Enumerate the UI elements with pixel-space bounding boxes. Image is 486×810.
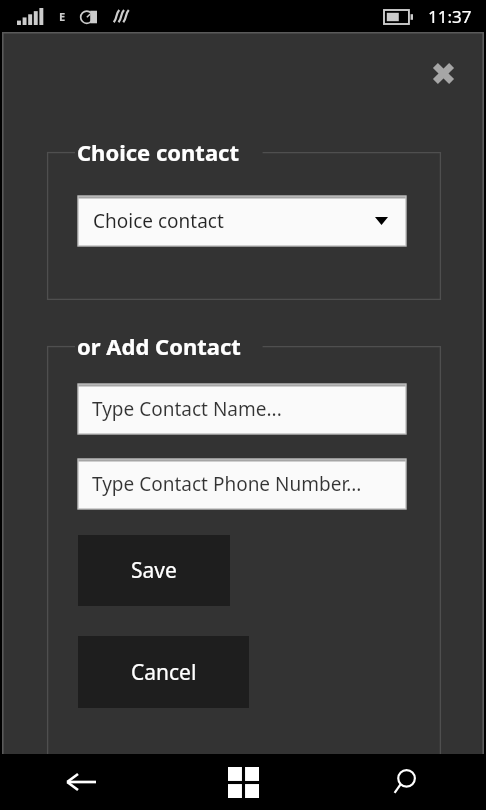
button[interactable]: Search [324,754,486,810]
staticText: E [59,9,66,24]
staticText: Cancel [131,658,197,687]
button[interactable]: Start [162,754,324,810]
staticText: Choice contact [93,208,224,234]
staticText: or Add Contact [77,331,241,361]
staticText: Choice contact [77,137,239,167]
button[interactable]: Save [78,535,230,606]
button[interactable]: Back [0,754,162,810]
staticText: Save [131,556,177,585]
button[interactable]: Type Contact Phone Number... [78,459,406,509]
staticText: Type Contact Name... [92,396,282,422]
button[interactable]: Close [418,48,468,98]
button[interactable]: Type Contact Name... [78,384,406,434]
button[interactable]: Cancel [78,636,249,708]
button[interactable]: Choice contact [78,196,406,246]
staticText: 11:37 [428,5,472,28]
staticText: Type Contact Phone Number... [92,471,362,497]
